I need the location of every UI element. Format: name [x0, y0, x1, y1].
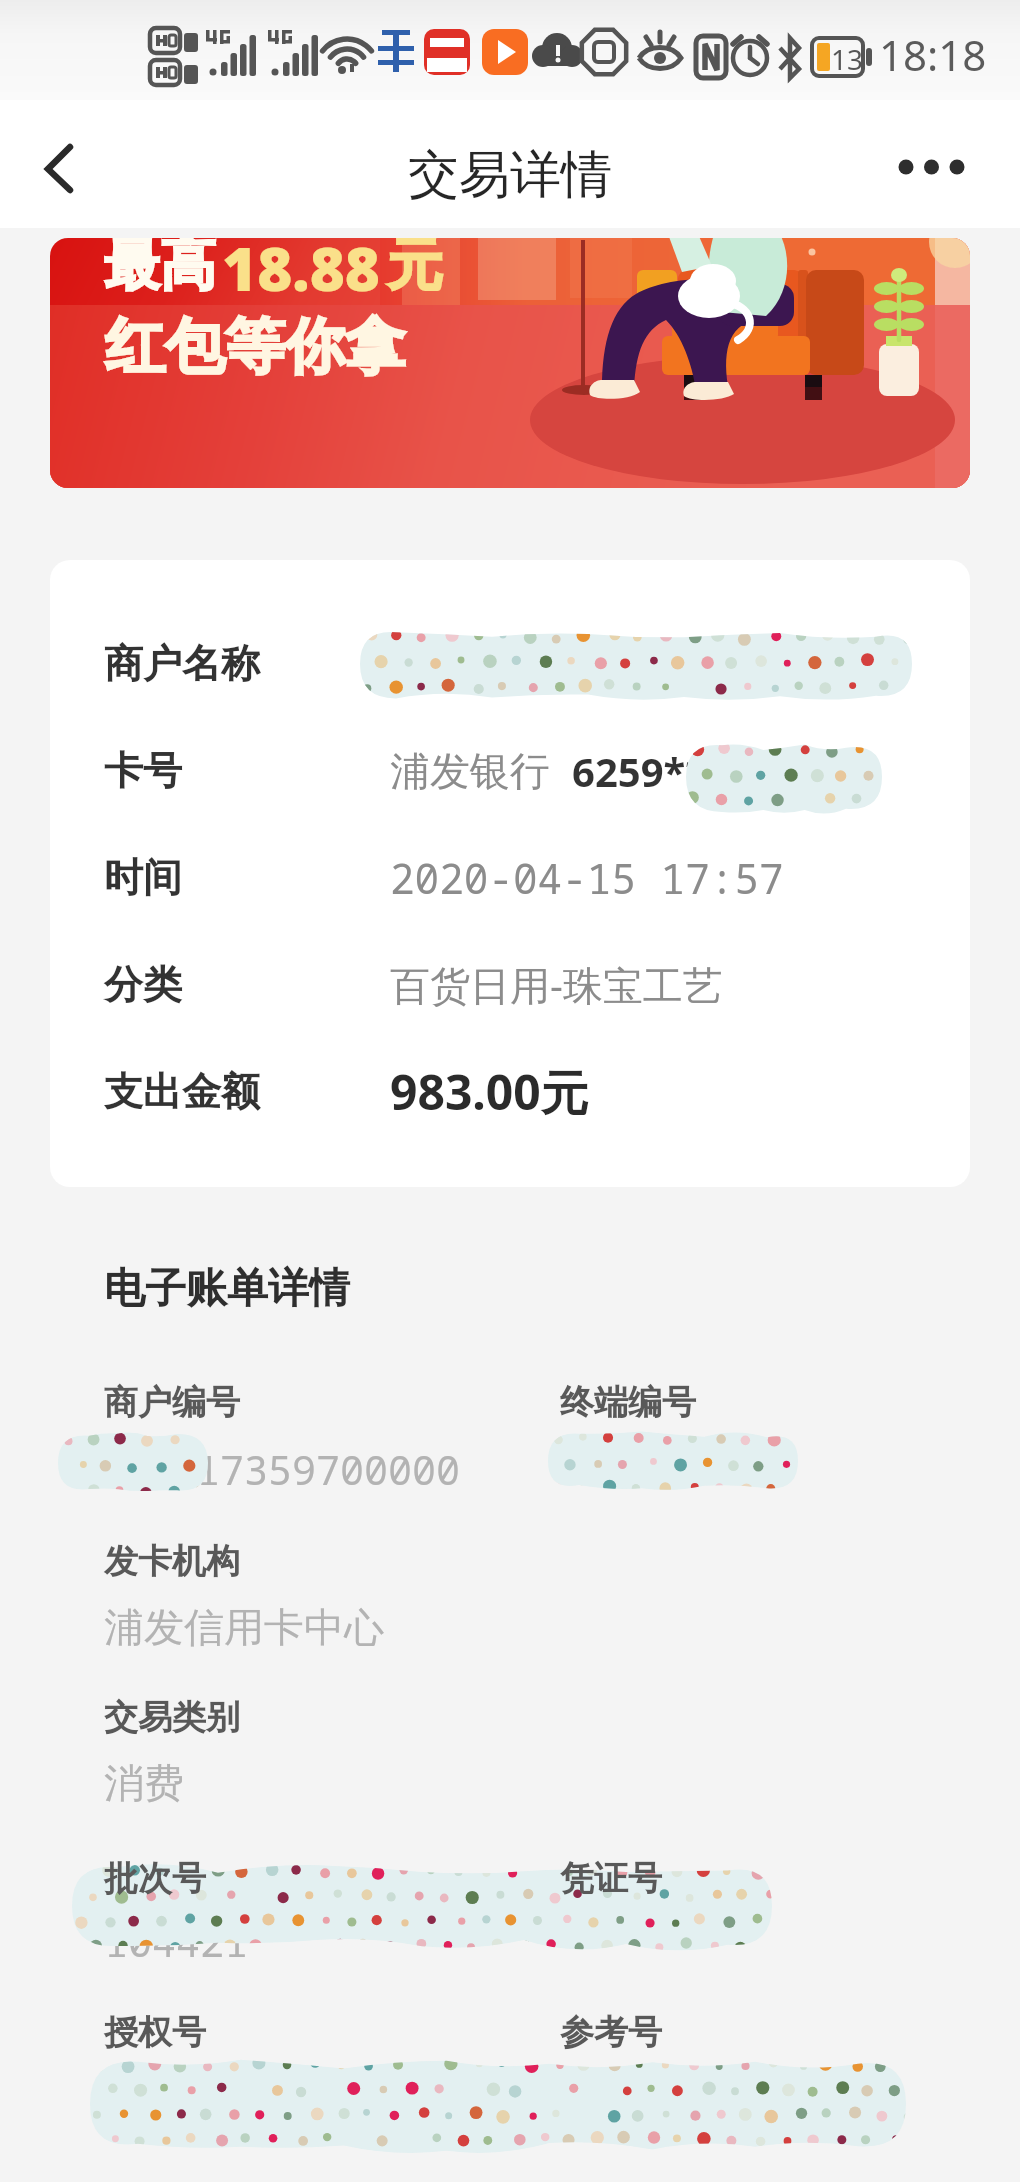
staticText: 元 [387, 238, 443, 301]
button[interactable]: More options [894, 135, 984, 199]
staticText: 分类 [104, 960, 390, 1009]
button[interactable]: 最高 [50, 238, 970, 488]
staticText: 18.88 [222, 238, 380, 309]
button[interactable]: 卡号 [50, 717, 970, 824]
staticText: 17359700000 [196, 1442, 460, 1496]
staticText: 支出金额 [104, 1067, 390, 1116]
button[interactable]: 支出金额 [50, 1038, 970, 1145]
staticText: 交易类别 [104, 1696, 240, 1739]
staticText: 13 [831, 40, 864, 78]
button[interactable]: Back [18, 132, 90, 204]
staticText: 批次号 [104, 1857, 206, 1900]
staticText: 2020-04-15 17:57 [390, 850, 784, 906]
staticText: 消费 [104, 1758, 184, 1808]
staticText: 983.00元 [390, 1059, 589, 1125]
staticText: 交易详情 [408, 143, 612, 207]
staticText: 参考号 [560, 2011, 662, 2054]
staticText: 18:18 [879, 26, 987, 83]
staticText: 17575177106 [560, 2070, 824, 2124]
staticText: 商户名称 [104, 639, 390, 688]
staticText: 6259** [572, 744, 707, 798]
staticText: 最高 [104, 238, 216, 301]
staticText: 商户编号 [104, 1381, 240, 1424]
staticText: 授权号 [104, 2011, 206, 2054]
staticText: 时间 [104, 853, 390, 902]
staticText: 浦发银行 [390, 746, 550, 796]
staticText: 浦发信用卡中心 [104, 1602, 384, 1652]
button[interactable]: 商户名称 [50, 610, 970, 717]
staticText: 86019322 [104, 2070, 296, 2124]
button[interactable]: 分类 [50, 931, 970, 1038]
staticText: 终端编号 [560, 1381, 696, 1424]
staticText: 红包等你拿 [105, 309, 405, 385]
button[interactable]: 时间 [50, 824, 970, 931]
staticText: 凭证号 [560, 1857, 662, 1900]
staticText: 发卡机构 [104, 1540, 240, 1583]
staticText: 卡号 [104, 746, 390, 795]
staticText: 电子账单详情 [104, 1263, 350, 1315]
staticText: 104421 [104, 1914, 248, 1968]
staticText: 百货日用-珠宝工艺 [390, 957, 723, 1012]
